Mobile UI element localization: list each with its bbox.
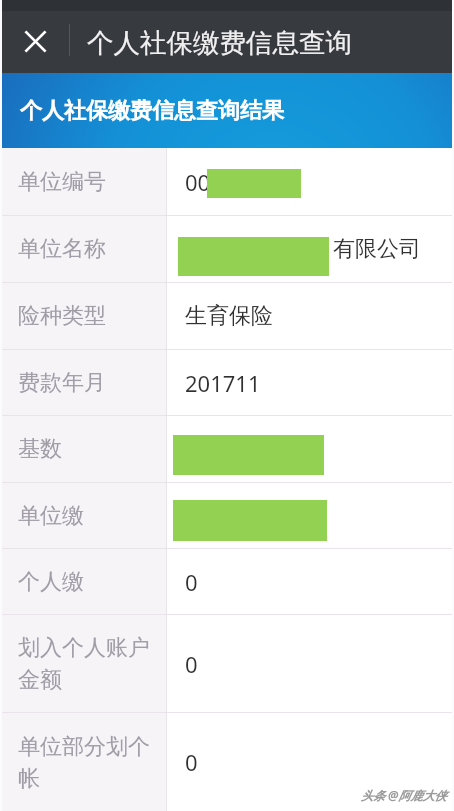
- staticText: 0: [185, 567, 198, 597]
- staticText: 单位部分划个帐: [18, 733, 166, 792]
- staticText: 划入个人账户金额: [18, 634, 166, 693]
- staticText: 个人社保缴费信息查询结果: [20, 97, 284, 125]
- staticText: 险种类型: [18, 302, 106, 330]
- staticText: 基数: [18, 435, 62, 463]
- staticText: 单位缴: [18, 502, 84, 530]
- staticText: 个人社保缴费信息查询: [87, 26, 352, 59]
- staticText: 费款年月: [18, 369, 106, 397]
- staticText: 头条 @阿鹿大侠: [361, 787, 447, 803]
- staticText: 0: [185, 649, 198, 679]
- staticText: 单位编号: [18, 168, 106, 196]
- staticText: 有限公司: [333, 235, 421, 263]
- staticText: 0: [185, 747, 198, 777]
- staticText: 生育保险: [185, 302, 273, 330]
- staticText: 00: [185, 167, 211, 197]
- button[interactable]: Close: [0, 11, 60, 73]
- staticText: 单位名称: [18, 235, 106, 263]
- staticText: 201711: [185, 368, 261, 398]
- staticText: 个人缴: [18, 568, 84, 596]
